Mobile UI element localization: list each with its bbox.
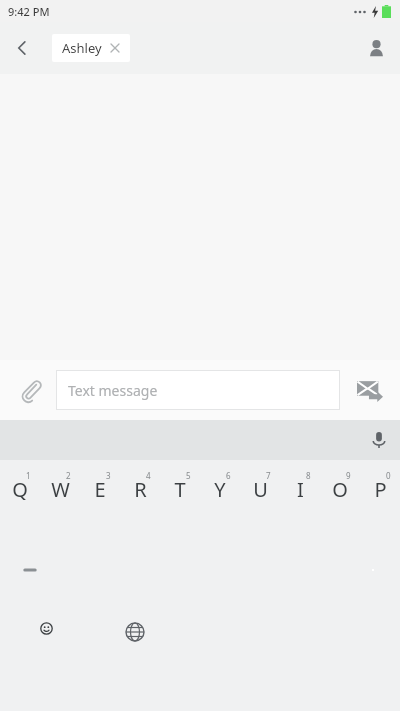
staticText: W [51, 476, 70, 503]
staticText: Text message [68, 381, 158, 400]
staticText: 9 [346, 470, 351, 481]
button[interactable]: R [120, 460, 160, 518]
button[interactable]: Voice input [358, 420, 400, 460]
staticText: 4 [146, 470, 151, 481]
button[interactable]: E [80, 460, 120, 518]
button[interactable]: Back [0, 26, 44, 70]
button[interactable]: Q [0, 460, 40, 518]
button[interactable]: W [40, 460, 80, 518]
button[interactable]: T [160, 460, 200, 518]
button[interactable]: Send [350, 370, 390, 410]
staticText: E [94, 476, 106, 503]
staticText: T [174, 476, 186, 503]
staticText: 6 [226, 470, 231, 481]
staticText: U [253, 476, 268, 503]
staticText: P [374, 476, 387, 503]
staticText: 2 [66, 470, 71, 481]
staticText: 7 [266, 470, 271, 481]
staticText: Q [12, 476, 28, 503]
staticText: 8 [306, 470, 311, 481]
staticText: 1 [26, 470, 31, 481]
button[interactable]: O [320, 460, 360, 518]
button[interactable]: Contacts [352, 24, 400, 72]
staticText: Ashley [62, 39, 102, 57]
staticText: 9:42 PM [8, 4, 50, 19]
staticText: 5 [186, 470, 191, 481]
staticText: 0 [386, 470, 391, 481]
staticText: R [134, 476, 147, 503]
staticText: 3 [106, 470, 111, 481]
button[interactable]: P [360, 460, 400, 518]
button[interactable]: Y [200, 460, 240, 518]
staticText: O [332, 476, 348, 503]
button[interactable]: U [240, 460, 280, 518]
button[interactable]: Attach [10, 369, 52, 411]
staticText: I [297, 476, 304, 503]
button[interactable]: Ashley [52, 34, 130, 62]
staticText: Y [214, 476, 226, 503]
button[interactable]: Text message [56, 370, 340, 410]
button[interactable]: I [280, 460, 320, 518]
